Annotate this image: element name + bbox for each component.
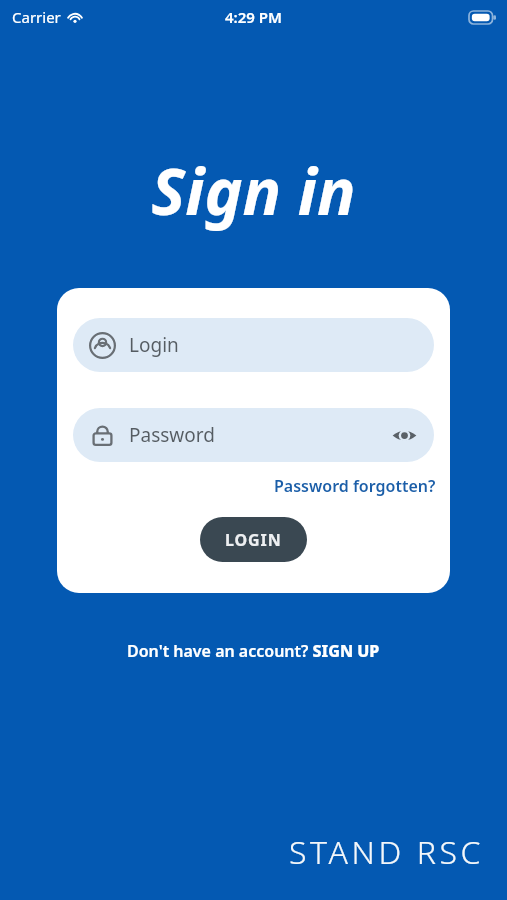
staticText: Password bbox=[129, 422, 215, 448]
staticText: STAND RSC bbox=[289, 830, 485, 874]
button[interactable]: LOGIN bbox=[200, 517, 307, 562]
staticText: Don't have an account? SIGN UP bbox=[127, 640, 380, 662]
button[interactable]: Password forgotten? bbox=[260, 471, 450, 501]
staticText: LOGIN bbox=[225, 529, 282, 551]
staticText: Carrier bbox=[12, 7, 61, 27]
button[interactable]: Password bbox=[73, 408, 434, 462]
staticText: 4:29 PM bbox=[225, 7, 282, 27]
staticText: Sign in bbox=[151, 147, 356, 234]
button[interactable]: Don't have an account? SIGN UP bbox=[121, 634, 386, 668]
staticText: Login bbox=[129, 332, 179, 358]
staticText: Password forgotten? bbox=[274, 475, 436, 497]
button[interactable]: Login bbox=[73, 318, 434, 372]
button[interactable]: Show password bbox=[387, 418, 421, 452]
